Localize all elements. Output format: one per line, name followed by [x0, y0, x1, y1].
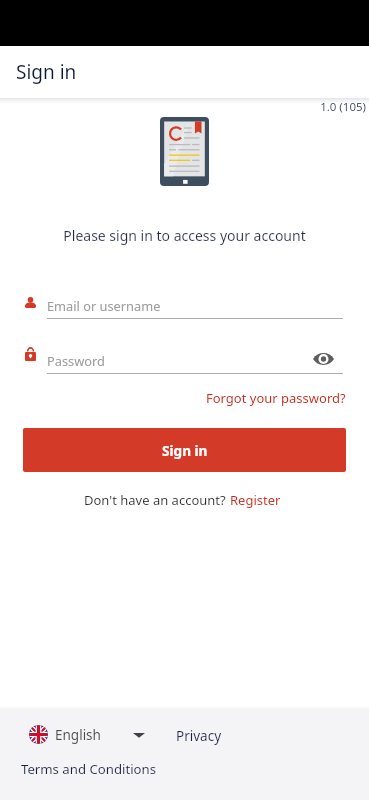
button[interactable]: Sign in — [23, 428, 346, 472]
staticText: Please sign in to access your account — [0, 226, 369, 245]
button[interactable]: Privacy — [170, 721, 228, 751]
staticText: Password — [47, 352, 105, 369]
staticText: Sign in — [16, 59, 77, 85]
staticText: Register — [230, 491, 281, 509]
button[interactable]: Register — [226, 485, 285, 515]
staticText: Forgot your password? — [206, 389, 346, 407]
button[interactable]: Terms and Conditions — [15, 754, 163, 784]
button[interactable]: English — [23, 719, 151, 750]
staticText: Terms and Conditions — [21, 760, 157, 778]
staticText: Email or username — [47, 297, 161, 314]
staticText: 1.0 (105) — [0, 99, 366, 115]
staticText: Privacy — [176, 727, 222, 745]
button[interactable]: Forgot your password? — [202, 381, 350, 415]
staticText: Sign in — [162, 441, 208, 460]
staticText: English — [55, 726, 101, 744]
button[interactable]: Show password — [308, 347, 339, 371]
staticText: Don't have an account? — [84, 491, 226, 509]
